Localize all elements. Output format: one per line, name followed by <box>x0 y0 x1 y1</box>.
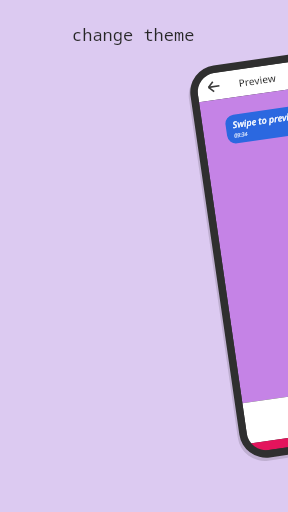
button[interactable]: change theme wallpaper preview <box>0 0 288 512</box>
